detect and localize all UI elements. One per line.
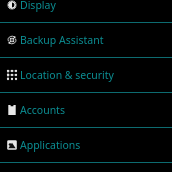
button[interactable]: Display xyxy=(0,0,172,22)
staticText: Accounts xyxy=(20,103,65,117)
button[interactable]: Backup Assistant xyxy=(0,22,172,57)
button[interactable]: Accounts xyxy=(0,92,172,127)
staticText: Backup Assistant xyxy=(20,33,104,47)
staticText: Location & security xyxy=(20,68,114,82)
button[interactable]: Location & security xyxy=(0,57,172,92)
staticText: Display xyxy=(20,0,56,12)
staticText: Applications xyxy=(20,138,81,152)
button[interactable]: Applications xyxy=(0,127,172,162)
